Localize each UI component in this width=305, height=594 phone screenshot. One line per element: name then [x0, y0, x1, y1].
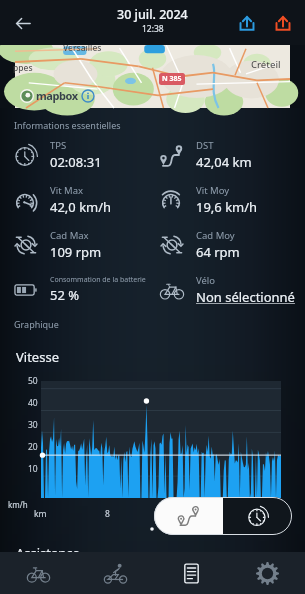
- staticText: ppes: [13, 62, 33, 74]
- staticText: Non sélectionné: [196, 288, 295, 306]
- staticText: 30 juil. 2024: [117, 6, 188, 23]
- button[interactable]: Settings: [229, 552, 305, 594]
- button[interactable]: Vit Moy: [152, 177, 305, 222]
- button[interactable]: Vit Max: [0, 177, 152, 222]
- staticText: 19,6 km/h: [196, 198, 258, 216]
- staticText: Versailles: [63, 42, 102, 54]
- staticText: 40: [28, 397, 38, 409]
- staticText: DST: [196, 139, 214, 152]
- staticText: 109 rpm: [50, 243, 102, 261]
- staticText: 02:08:31: [50, 153, 102, 171]
- staticText: 8: [105, 508, 110, 520]
- button[interactable]: Route view: [154, 497, 223, 535]
- staticText: Consommation de la batterie: [50, 275, 146, 285]
- staticText: Créteil: [251, 58, 281, 71]
- button[interactable]: Cad Max: [0, 222, 152, 267]
- button[interactable]: TPS: [0, 132, 152, 177]
- button[interactable]: Activities: [153, 552, 229, 594]
- staticText: Cad Moy: [196, 229, 235, 242]
- staticText: 42,04 km: [196, 153, 252, 171]
- staticText: Assistance: [16, 544, 80, 562]
- staticText: 42,0 km/h: [50, 198, 112, 216]
- button[interactable]: Export: [230, 6, 264, 40]
- staticText: mapbox: [36, 88, 78, 103]
- staticText: Cad Max: [50, 229, 89, 242]
- button[interactable]: Rides: [77, 552, 153, 594]
- staticText: Vélo: [196, 274, 216, 287]
- staticText: 16: [176, 508, 186, 520]
- button[interactable]: Back: [6, 6, 40, 40]
- button[interactable]: Share to Strava: [266, 6, 300, 40]
- staticText: Vit Moy: [196, 184, 230, 197]
- staticText: N 385: [162, 74, 182, 84]
- button[interactable]: Consommation de la batterie: [0, 267, 152, 312]
- staticText: 64 rpm: [196, 243, 240, 261]
- staticText: km: [34, 508, 47, 520]
- button[interactable]: Cad Moy: [152, 222, 305, 267]
- staticText: 50: [28, 375, 38, 387]
- staticText: 30: [28, 419, 38, 431]
- button[interactable]: Bikes: [0, 552, 77, 594]
- button[interactable]: DST: [152, 132, 305, 177]
- button[interactable]: Time view: [223, 497, 292, 535]
- button[interactable]: Vélo: [152, 267, 305, 312]
- staticText: Informations essentielles: [14, 119, 121, 131]
- staticText: Graphique: [14, 318, 59, 330]
- staticText: 20: [28, 441, 38, 453]
- staticText: km/h: [8, 499, 28, 510]
- staticText: Vit Max: [50, 184, 84, 197]
- staticText: Vitesse: [16, 348, 59, 366]
- staticText: 52 %: [50, 286, 80, 304]
- staticText: TPS: [50, 139, 67, 152]
- staticText: 10: [28, 463, 38, 475]
- staticText: 12:38: [142, 23, 164, 35]
